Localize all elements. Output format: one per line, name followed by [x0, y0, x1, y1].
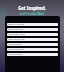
staticText: Choose happiness [8, 48, 25, 51]
button[interactable]: Believe in yourself [7, 23, 58, 26]
staticText: Get Inspired. [0, 5, 64, 11]
staticText: Stay positive today [8, 33, 25, 36]
staticText: Dream big always [8, 28, 24, 31]
staticText: Keep moving on [8, 53, 23, 56]
button[interactable]: Choose happiness [7, 48, 58, 51]
staticText: Make it happen [8, 43, 22, 46]
button[interactable]: Dream big always [7, 28, 58, 31]
staticText: Believe in yourself [8, 23, 25, 26]
button[interactable]: Keep moving on [7, 53, 58, 56]
button[interactable]: Make it happen [7, 43, 58, 46]
staticText: with Positive Vibes [0, 12, 64, 16]
staticText: Never give up now [8, 38, 25, 41]
button[interactable]: Never give up now [7, 38, 58, 41]
button[interactable]: Stay positive today [7, 33, 58, 36]
